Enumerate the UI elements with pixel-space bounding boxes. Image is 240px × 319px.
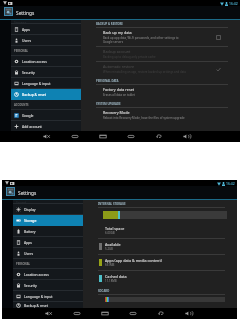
button[interactable]: Back [147,308,175,319]
staticText: Backing up to debug-only private cache [103,55,156,59]
staticText: Storage [14,20,27,23]
staticText: Settings [16,10,35,17]
staticText: Sound [16,200,27,203]
staticText: Back up app data, Wi-Fi passwords, and o… [103,36,179,44]
staticText: 16:42 [229,1,238,6]
staticText: 6.00GB [105,231,115,235]
staticText: Total space [105,226,125,231]
button[interactable]: Back [145,131,173,142]
staticText: SYSTEM UPGRADE [96,102,121,106]
button[interactable]: Volume up [175,308,203,319]
staticText: Security [24,283,37,288]
button[interactable]: Users [13,248,83,258]
button[interactable]: Language & input [11,78,81,88]
staticText: 661MB [105,263,115,267]
button[interactable]: Apps (app data & media content) [83,255,237,270]
staticText: Automatic restore [103,64,135,69]
staticText: INTERNAL STORAGE [98,202,126,206]
button[interactable]: Backup & reset [13,302,83,308]
button[interactable]: Volume up [173,131,201,142]
staticText: Recovery Mode [103,110,130,115]
button[interactable]: Home [91,308,119,319]
button[interactable]: Security [13,280,83,290]
button[interactable]: Recent apps [119,308,147,319]
staticText: Location access [24,272,49,277]
staticText: Reboot into Recovery Mode, have the file… [103,116,185,120]
button[interactable]: Backup & reset [11,89,81,99]
button[interactable]: Back [63,308,91,319]
staticText: Erases all data on tablet [103,93,135,97]
staticText: ACCOUNTS [14,103,29,107]
staticText: Display [24,207,36,212]
staticText: Users [22,38,32,43]
staticText: Available [105,242,121,247]
staticText: Back up my data [103,30,132,35]
button[interactable]: Add account [11,121,81,131]
staticText: 5.2GB [105,247,113,251]
button[interactable]: Users [11,35,81,45]
staticText: Factory data reset [103,87,135,92]
button[interactable]: Location access [11,56,81,66]
button[interactable]: Back up my data [81,28,240,46]
staticText: PERSONAL [14,49,29,53]
staticText: SDCARD [98,289,110,293]
staticText: Cached data [105,274,127,279]
button[interactable]: Apps [13,237,83,247]
staticText: Apps [24,240,32,245]
staticText: 16:42 [226,181,235,186]
staticText: Storage [24,218,37,223]
staticText: Backup account [103,49,131,54]
button[interactable]: Home [89,131,117,142]
staticText: Google [22,113,34,118]
button[interactable]: Available [83,239,237,254]
button[interactable]: Back [61,131,89,142]
staticText: Backup & reset [24,303,48,308]
button[interactable]: Language & input [13,291,83,301]
button[interactable]: Total space [83,223,237,238]
staticText: Users [24,251,34,256]
button[interactable]: Location access [13,269,83,279]
button[interactable]: Backup account [81,47,240,61]
button[interactable]: Cached data [83,271,237,286]
staticText: Backup & reset [22,92,46,97]
staticText: Battery [24,229,36,234]
staticText: Apps (app data & media content) [105,258,162,263]
button[interactable]: Battery [13,226,83,236]
staticText: Location access [22,59,47,64]
button[interactable]: Recovery Mode [81,108,240,122]
button[interactable]: Recent apps [117,131,145,142]
staticText: Language & input [22,81,51,86]
button[interactable]: Display [13,204,83,214]
button[interactable]: Storage [13,215,83,225]
staticText: When reinstalling an app, restore backed… [103,70,186,74]
staticText: BACKUP & RESTORE [96,22,123,26]
button[interactable]: Security [11,67,81,77]
staticText: PERSONAL [16,262,31,266]
staticText: Add account [22,124,42,129]
button[interactable]: Volume down [33,131,61,142]
staticText: 11.18MB [105,279,117,283]
button[interactable]: Google [11,110,81,120]
button[interactable]: Apps [11,24,81,34]
staticText: PERSONAL DATA [96,79,119,83]
button[interactable]: Automatic restore [81,62,240,76]
button[interactable]: Factory data reset [81,85,240,99]
staticText: Security [22,70,35,75]
staticText: Settings [18,190,37,197]
button[interactable]: Volume down [35,308,63,319]
staticText: Apps [22,27,30,32]
staticText: Language & input [24,294,53,299]
